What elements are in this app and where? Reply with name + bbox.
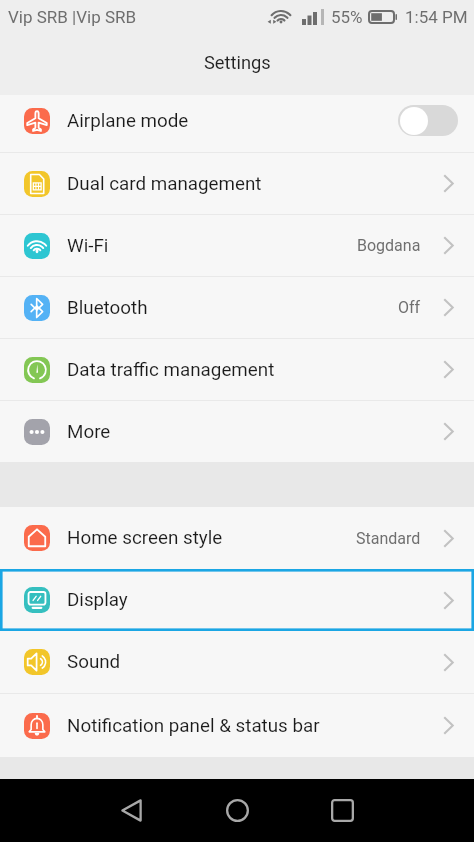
button[interactable]: Home	[211, 784, 264, 837]
staticText: 55%	[331, 7, 363, 27]
staticText: 1:54 PM	[405, 7, 468, 27]
staticText: Sound	[67, 651, 121, 673]
staticText: Airplane mode	[67, 110, 189, 132]
staticText: Wi-Fi	[67, 235, 109, 257]
button[interactable]: More	[0, 401, 474, 462]
staticText: Data traffic management	[67, 359, 275, 381]
button[interactable]: Sound	[0, 631, 474, 693]
button[interactable]: Back	[105, 784, 158, 837]
staticText: Notification panel & status bar	[67, 715, 320, 737]
button[interactable]: Airplane mode	[0, 95, 474, 152]
button[interactable]: Wi-Fi	[0, 215, 474, 276]
button[interactable]: Notification panel & status bar	[0, 694, 474, 757]
button[interactable]: Display	[0, 569, 474, 631]
button[interactable]: Recents	[316, 784, 369, 837]
button[interactable]: Data traffic management	[0, 339, 474, 400]
staticText: Dual card management	[67, 173, 262, 195]
staticText: Standard	[356, 529, 421, 548]
staticText: Bogdana	[357, 236, 421, 255]
button[interactable]: Airplane mode toggle	[398, 105, 458, 136]
staticText: More	[67, 421, 111, 443]
staticText: Bluetooth	[67, 297, 148, 319]
button[interactable]: Dual card management	[0, 153, 474, 214]
staticText: Home screen style	[67, 527, 223, 549]
button[interactable]: Home screen style	[0, 507, 474, 569]
staticText: Display	[67, 589, 128, 611]
button[interactable]: Bluetooth	[0, 277, 474, 338]
staticText: Vip SRB |Vip SRB	[8, 7, 137, 27]
staticText: Off	[398, 298, 421, 317]
staticText: Settings	[204, 52, 271, 73]
